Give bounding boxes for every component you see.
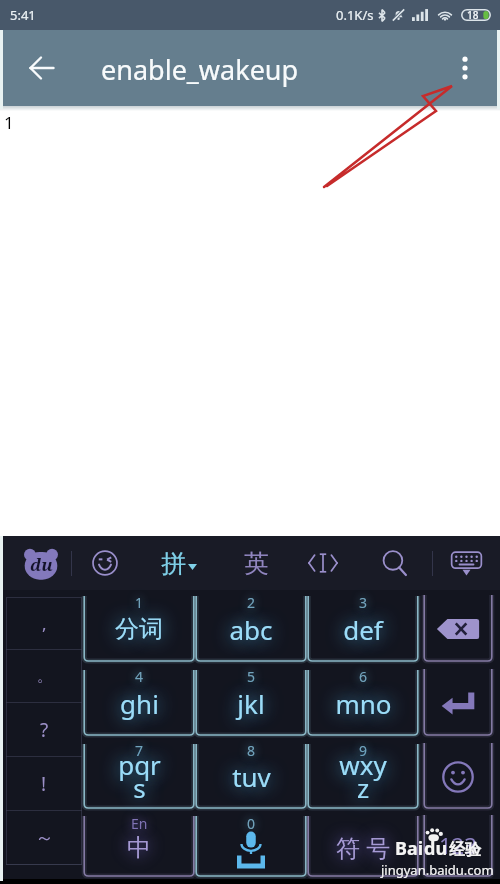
staticText: 8 <box>247 741 256 760</box>
button[interactable]: ～ <box>6 811 82 865</box>
staticText: pqr s <box>118 747 161 806</box>
staticText: 3 <box>359 593 368 612</box>
staticText: 2 <box>247 593 256 612</box>
button[interactable]: En <box>83 811 195 879</box>
staticText: jingyan.baidu.com <box>381 861 494 879</box>
staticText: jkl <box>237 686 265 721</box>
button[interactable]: More options <box>443 46 487 90</box>
button[interactable]: 符 号 <box>307 811 419 879</box>
staticText: 18 <box>467 8 479 22</box>
button[interactable]: ! <box>6 757 82 811</box>
staticText: 经验 <box>449 840 481 860</box>
button[interactable]: 3 <box>307 590 419 664</box>
staticText: 1 <box>135 593 144 612</box>
staticText: 英 <box>244 548 269 579</box>
staticText: Bai <box>395 836 424 861</box>
button[interactable]: Hide keyboard <box>440 536 492 590</box>
button[interactable]: 英 <box>231 536 281 590</box>
staticText: 6 <box>359 667 368 686</box>
button[interactable]: 7 <box>83 738 195 811</box>
button[interactable]: 拼 <box>161 536 221 590</box>
button[interactable]: Voice input <box>195 811 307 879</box>
button[interactable]: Move cursor <box>297 536 349 590</box>
button[interactable]: 5 <box>195 664 307 738</box>
staticText: tuv <box>232 759 271 794</box>
staticText: ! <box>41 771 47 797</box>
staticText: def <box>343 612 383 647</box>
staticText: wxy z <box>339 747 387 806</box>
staticText: 中 <box>127 833 151 863</box>
staticText: 4 <box>135 667 144 686</box>
button[interactable]: Emoji <box>423 738 493 811</box>
staticText: enable_wakeup <box>101 51 299 88</box>
button[interactable]: Emoji <box>79 536 131 590</box>
staticText: 分词 <box>115 614 163 644</box>
staticText: ? <box>40 717 49 743</box>
button[interactable]: 6 <box>307 664 419 738</box>
staticText: abc <box>229 612 273 647</box>
button[interactable]: ? <box>6 703 82 757</box>
staticText: du <box>424 836 448 861</box>
staticText: mno <box>335 686 392 721</box>
staticText: du <box>30 553 53 576</box>
staticText: ～ <box>35 826 54 850</box>
staticText: 1 <box>4 111 14 134</box>
staticText: 0 <box>247 814 256 833</box>
staticText: En <box>131 814 148 833</box>
button[interactable]: 123 <box>423 811 493 879</box>
staticText: 0.1K/s <box>336 6 374 24</box>
button[interactable]: 9 <box>307 738 419 811</box>
button[interactable]: 4 <box>83 664 195 738</box>
button[interactable]: Back <box>19 46 63 90</box>
staticText: , <box>42 612 47 635</box>
staticText: 拼 <box>161 548 186 579</box>
staticText: ghi <box>120 686 159 721</box>
staticText: 5 <box>247 667 256 686</box>
button[interactable]: 2 <box>195 590 307 664</box>
button[interactable]: 。 <box>6 650 82 703</box>
staticText: 符 号 <box>336 831 391 864</box>
staticText: 5:41 <box>10 6 36 24</box>
button[interactable]: Baidu input method <box>6 536 76 590</box>
button[interactable]: Enter <box>423 664 493 738</box>
staticText: 9 <box>359 741 368 760</box>
button[interactable]: 8 <box>195 738 307 811</box>
staticText: 7 <box>135 741 144 760</box>
staticText: 。 <box>37 667 52 686</box>
button[interactable]: Backspace <box>423 590 493 664</box>
staticText: 123 <box>439 830 477 860</box>
button[interactable]: Search <box>369 536 421 590</box>
button[interactable]: , <box>6 597 82 650</box>
button[interactable]: 1 <box>83 590 195 664</box>
